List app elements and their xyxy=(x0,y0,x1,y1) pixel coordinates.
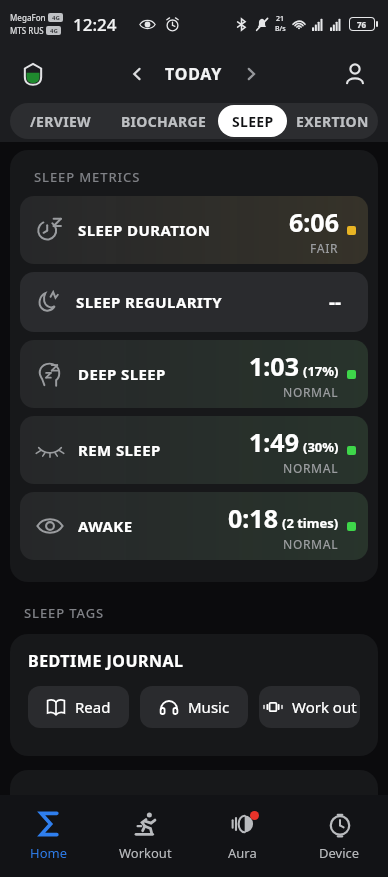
button[interactable]: Next day xyxy=(235,58,267,90)
staticText: 76 xyxy=(357,19,367,30)
staticText: SLEEP TAGS xyxy=(24,604,105,622)
button[interactable]: Work out xyxy=(259,686,360,728)
button[interactable]: EXERTION xyxy=(287,103,378,139)
staticText: SLEEP xyxy=(232,112,274,131)
button[interactable]: SLEEP xyxy=(218,105,287,137)
staticText: Home xyxy=(30,844,67,862)
staticText: 4G xyxy=(52,14,60,22)
button[interactable]: Workout xyxy=(97,795,194,877)
staticText: NORMAL xyxy=(283,536,339,552)
staticText: Read xyxy=(75,697,111,717)
staticText: Work out xyxy=(292,697,357,717)
button[interactable]: Read xyxy=(28,686,129,728)
button[interactable]: Device xyxy=(291,795,388,877)
staticText: 1:03 xyxy=(249,349,299,383)
staticText: (30%) xyxy=(303,438,339,456)
staticText: BEDTIME JOURNAL xyxy=(28,650,184,672)
button[interactable]: /ERVIEW xyxy=(10,103,110,139)
button[interactable]: AWAKE xyxy=(20,492,368,560)
button[interactable]: SLEEP REGULARITY xyxy=(20,272,368,332)
staticText: 21 xyxy=(276,14,285,24)
staticText: -- xyxy=(329,289,342,315)
staticText: SLEEP METRICS xyxy=(34,168,141,186)
staticText: 1:49 xyxy=(249,425,299,459)
staticText: MegaFon xyxy=(10,12,46,23)
staticText: DEEP SLEEP xyxy=(78,364,166,384)
staticText: SLEEP DURATION xyxy=(78,220,211,240)
staticText: 12:24 xyxy=(73,13,117,36)
button[interactable]: Aura xyxy=(194,795,291,877)
staticText: Aura xyxy=(228,844,257,862)
staticText: 6:06 xyxy=(289,205,339,239)
button[interactable]: DEEP SLEEP xyxy=(20,340,368,408)
staticText: SLEEP REGULARITY xyxy=(76,292,222,312)
staticText: TODAY xyxy=(165,63,223,85)
staticText: EXERTION xyxy=(296,112,369,131)
staticText: REM SLEEP xyxy=(78,440,161,460)
button[interactable]: Previous day xyxy=(121,58,153,90)
staticText: B/s xyxy=(275,24,286,34)
button[interactable]: Watch device xyxy=(16,57,50,91)
staticText: NORMAL xyxy=(283,384,339,400)
staticText: MTS RUS xyxy=(10,25,44,36)
staticText: /ERVIEW xyxy=(30,112,91,131)
staticText: 0:18 xyxy=(228,501,278,535)
button[interactable]: REM SLEEP xyxy=(20,416,368,484)
staticText: FAIR xyxy=(310,240,339,256)
button[interactable]: Home xyxy=(0,795,97,877)
staticText: NORMAL xyxy=(283,460,339,476)
staticText: Music xyxy=(188,697,230,717)
staticText: BIOCHARGE xyxy=(121,112,207,131)
button[interactable]: Music xyxy=(140,686,248,728)
button[interactable]: BIOCHARGE xyxy=(110,103,218,139)
button[interactable]: TODAY xyxy=(157,57,231,91)
staticText: Device xyxy=(319,844,360,862)
staticText: (2 times) xyxy=(282,514,339,532)
staticText: Workout xyxy=(119,844,172,862)
staticText: 4G xyxy=(50,27,58,35)
button[interactable]: Profile xyxy=(338,57,372,91)
staticText: AWAKE xyxy=(78,516,133,536)
button[interactable]: SLEEP DURATION xyxy=(20,196,368,264)
staticText: (17%) xyxy=(303,362,339,380)
